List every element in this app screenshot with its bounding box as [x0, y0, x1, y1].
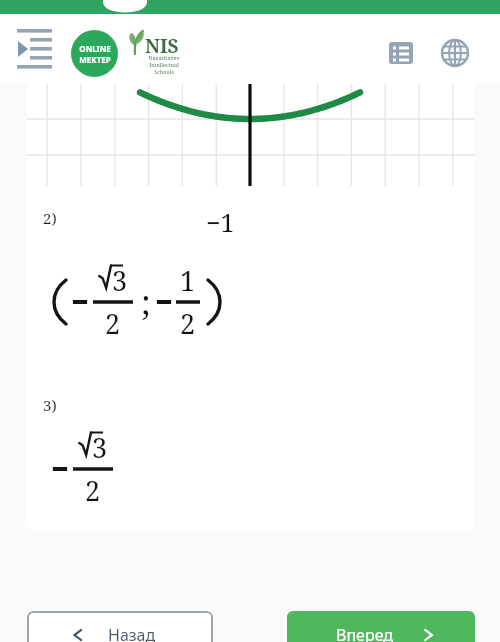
staticText: 3) [43, 395, 57, 415]
staticText: 2 [85, 472, 101, 509]
staticText: MEKTEP [79, 54, 111, 65]
staticText: 3 [112, 262, 128, 299]
button[interactable]: Вперед [287, 611, 475, 642]
staticText: −1 [206, 205, 235, 239]
button[interactable]: Online Mektep [71, 30, 118, 77]
staticText: ; [141, 279, 151, 325]
button[interactable]: Language [441, 39, 469, 67]
staticText: Вперед [336, 624, 394, 642]
button[interactable]: List view [388, 40, 414, 66]
staticText: NIS [145, 33, 179, 59]
staticText: 3 [92, 429, 108, 466]
staticText: 1 [180, 262, 196, 299]
button[interactable]: Назад [27, 611, 213, 642]
staticText: 2 [180, 305, 196, 342]
staticText: Nazarbayev [148, 54, 180, 61]
staticText: Intellectual [149, 61, 179, 68]
button[interactable]: Menu [16, 33, 58, 67]
staticText: ONLINE [79, 43, 111, 54]
staticText: Назад [108, 624, 156, 642]
staticText: 2 [105, 305, 121, 342]
staticText: 2) [43, 208, 57, 228]
staticText: Schools [154, 68, 174, 75]
